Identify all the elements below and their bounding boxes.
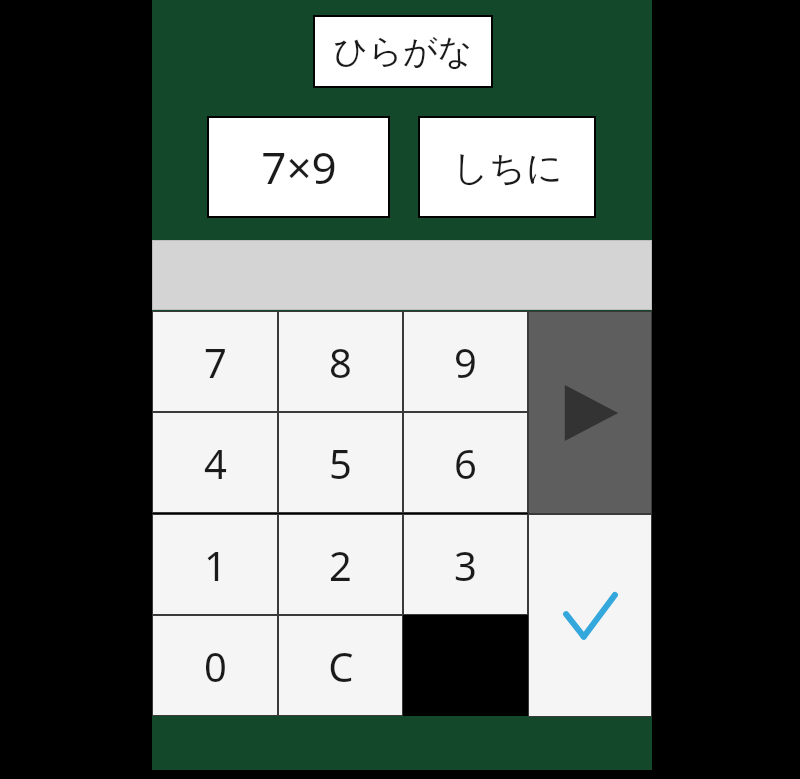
staticText: しちに bbox=[452, 145, 563, 190]
staticText: 2 bbox=[329, 538, 352, 592]
staticText: 8 bbox=[329, 335, 352, 389]
staticText: 6 bbox=[454, 436, 477, 490]
button[interactable]: Switch kana mode bbox=[313, 15, 493, 88]
button[interactable]: 4 bbox=[152, 412, 278, 513]
staticText: 5 bbox=[329, 436, 352, 490]
button[interactable]: Question bbox=[207, 116, 390, 218]
button[interactable]: 7 bbox=[152, 311, 278, 412]
button[interactable]: 2 bbox=[278, 514, 403, 615]
staticText: C bbox=[328, 639, 354, 693]
staticText: 0 bbox=[204, 639, 227, 693]
button[interactable]: 8 bbox=[278, 311, 403, 412]
button[interactable]: Play audio bbox=[528, 311, 652, 514]
staticText: 1 bbox=[204, 538, 227, 592]
button[interactable]: 3 bbox=[403, 514, 528, 615]
staticText: 7 bbox=[204, 335, 227, 389]
staticText: ひらがな bbox=[333, 30, 473, 73]
button[interactable]: Answer field bbox=[152, 240, 652, 310]
staticText: 4 bbox=[204, 436, 227, 490]
button[interactable]: Reading bbox=[418, 116, 596, 218]
staticText: 3 bbox=[454, 538, 477, 592]
button[interactable]: 9 bbox=[403, 311, 528, 412]
button[interactable]: Submit answer bbox=[528, 514, 652, 717]
button[interactable]: 1 bbox=[152, 514, 278, 615]
staticText: 9 bbox=[454, 335, 477, 389]
button[interactable]: 6 bbox=[403, 412, 528, 513]
button[interactable]: C bbox=[278, 615, 403, 716]
button[interactable]: 5 bbox=[278, 412, 403, 513]
button[interactable]: 0 bbox=[152, 615, 278, 716]
staticText: 7×9 bbox=[261, 137, 337, 197]
